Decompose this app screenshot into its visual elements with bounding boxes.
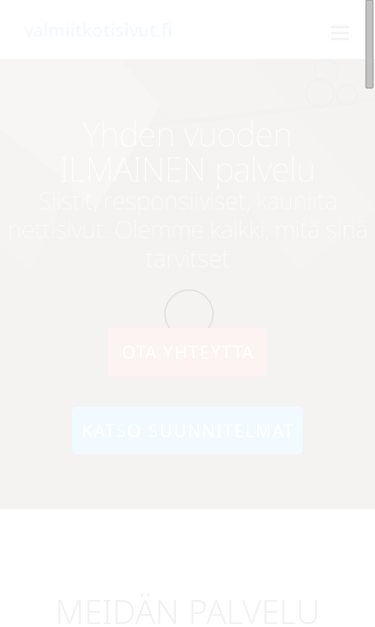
button[interactable]: valmiitkotisivut.fi — [24, 18, 184, 42]
button[interactable]: Menu — [323, 16, 357, 50]
staticText: valmiitkotisivut.fi — [24, 18, 172, 41]
button[interactable]: KATSO SUUNNITELMAT — [72, 407, 303, 454]
staticText: KATSO SUUNNITELMAT — [82, 419, 293, 442]
staticText: MEIDÄN PALVELU — [55, 589, 320, 627]
staticText: OTA YHTEYTTÄ — [122, 340, 253, 363]
